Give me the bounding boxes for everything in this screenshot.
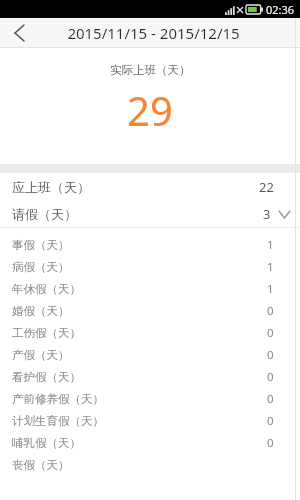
staticText: 产前修养假（天）	[12, 392, 104, 406]
staticText: 0	[267, 413, 274, 429]
button[interactable]: 看护假（天）	[0, 366, 300, 388]
staticText: 02:36	[266, 2, 295, 17]
button[interactable]: 哺乳假（天）	[0, 432, 300, 454]
staticText: 0	[267, 391, 274, 407]
staticText: 0	[267, 435, 274, 451]
staticText: 病假（天）	[12, 260, 70, 274]
button[interactable]: 婚假（天）	[0, 300, 300, 322]
button[interactable]: 年休假（天）	[0, 278, 300, 300]
staticText: 1	[267, 281, 274, 297]
button[interactable]: 产假（天）	[0, 344, 300, 366]
staticText: 0	[267, 347, 274, 363]
staticText: 计划生育假（天）	[12, 414, 104, 428]
staticText: 0	[267, 325, 274, 341]
button[interactable]: 产前修养假（天）	[0, 388, 300, 410]
staticText: 请假（天）	[12, 206, 77, 222]
staticText: 年休假（天）	[12, 282, 81, 296]
staticText: 3	[263, 205, 271, 223]
staticText: 哺乳假（天）	[12, 436, 81, 450]
staticText: 0	[267, 303, 274, 319]
staticText: 看护假（天）	[12, 370, 81, 384]
staticText: 2015/11/15 - 2015/12/15	[67, 23, 240, 43]
button[interactable]: 应上班（天）	[0, 173, 300, 200]
button[interactable]: 丧假（天）	[0, 454, 300, 476]
staticText: 1	[267, 259, 274, 275]
staticText: 工伤假（天）	[12, 326, 81, 340]
button[interactable]: 病假（天）	[0, 256, 300, 278]
button[interactable]: 计划生育假（天）	[0, 410, 300, 432]
button[interactable]: Back	[0, 18, 38, 48]
staticText: 丧假（天）	[12, 458, 70, 472]
button[interactable]: 请假（天）	[0, 200, 300, 227]
button[interactable]: 工伤假（天）	[0, 322, 300, 344]
staticText: 22	[259, 178, 274, 196]
staticText: 实际上班（天）	[110, 63, 191, 77]
staticText: 0	[267, 369, 274, 385]
staticText: 产假（天）	[12, 348, 70, 362]
button[interactable]: 事假（天）	[0, 234, 300, 256]
staticText: 事假（天）	[12, 238, 70, 252]
staticText: 婚假（天）	[12, 304, 70, 318]
staticText: 1	[267, 237, 274, 253]
staticText: 应上班（天）	[12, 179, 90, 195]
staticText: 29	[127, 83, 173, 137]
